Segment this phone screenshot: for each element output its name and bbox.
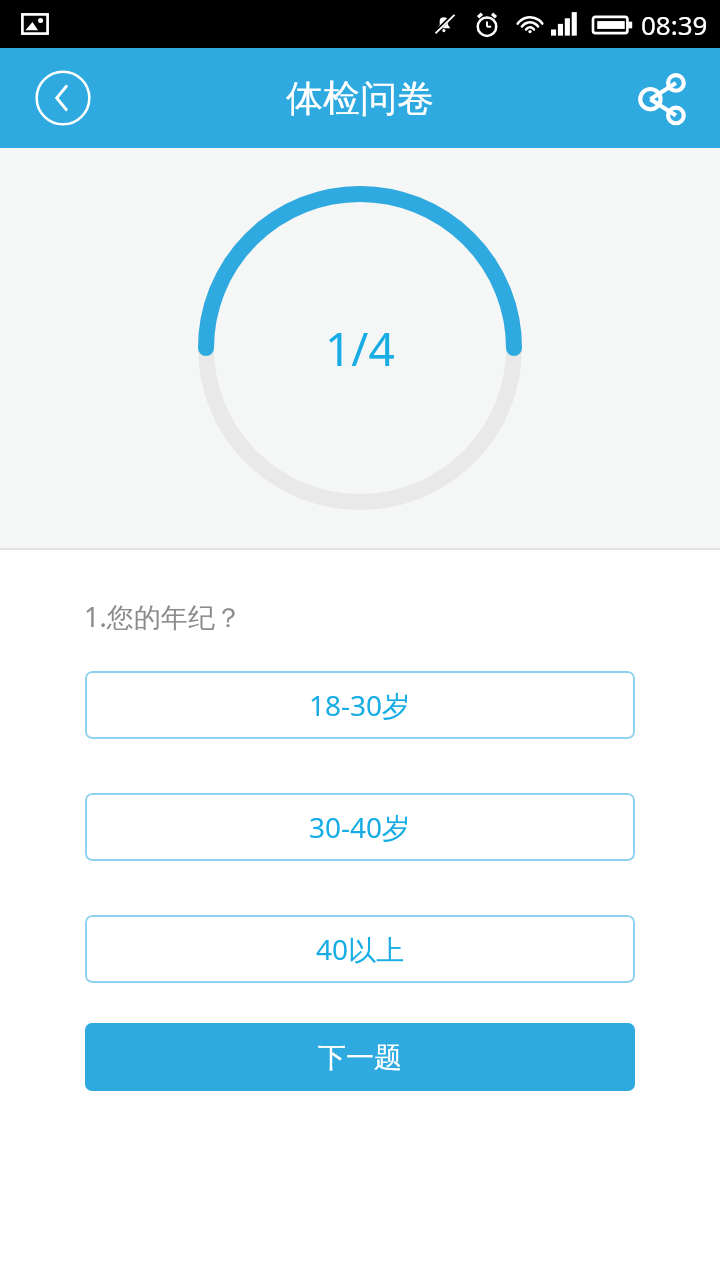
staticText: 下一题 [318, 1040, 402, 1075]
staticText: 40以上 [316, 930, 405, 968]
staticText: 1.您的年纪？ [84, 598, 242, 635]
button[interactable]: 40以上 [85, 915, 635, 983]
button[interactable]: 下一题 [85, 1023, 635, 1091]
button[interactable]: 18-30岁 [85, 671, 635, 739]
staticText: 体检问卷 [286, 75, 434, 122]
button[interactable]: Back [29, 64, 97, 132]
button[interactable]: 30-40岁 [85, 793, 635, 861]
staticText: 08:39 [641, 7, 708, 42]
staticText: 18-30岁 [309, 686, 411, 724]
staticText: 1/4 [325, 317, 395, 380]
button[interactable]: Share [624, 60, 700, 136]
staticText: 30-40岁 [309, 808, 411, 846]
